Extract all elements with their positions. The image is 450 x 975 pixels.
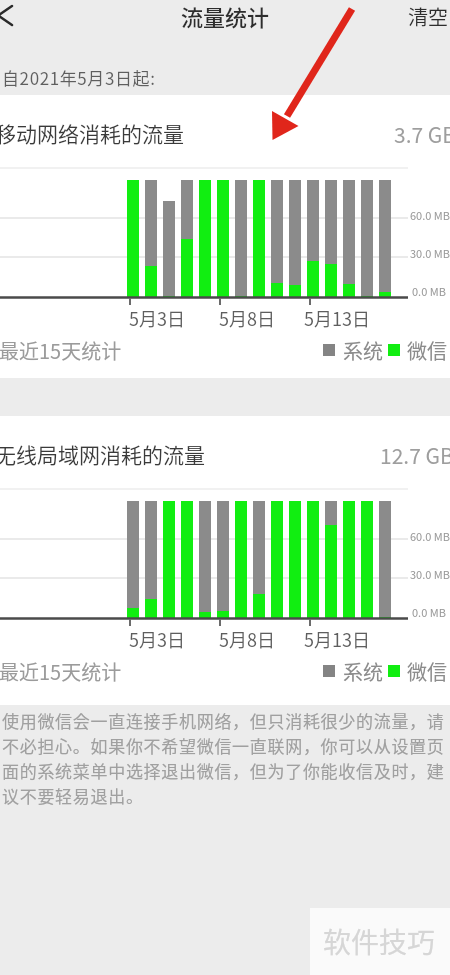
staticText: 无线局域网消耗的流量: [0, 439, 205, 467]
staticText: 系统: [343, 336, 383, 364]
staticText: 最近15天统计: [0, 657, 122, 685]
staticText: 微信: [407, 657, 447, 685]
staticText: 移动网络消耗的流量: [0, 118, 184, 146]
staticText: 5月8日: [219, 626, 275, 652]
staticText: 微信: [407, 336, 447, 364]
staticText: 5月8日: [219, 305, 275, 331]
staticText: 12.7 GB: [380, 440, 450, 468]
staticText: 60.0 MB: [410, 528, 450, 544]
staticText: 5月3日: [129, 305, 185, 331]
button[interactable]: 清空: [400, 0, 450, 32]
staticText: 清空: [408, 2, 448, 31]
staticText: 流量统计: [181, 0, 270, 32]
staticText: 30.0 MB: [410, 245, 450, 261]
button[interactable]: [0, 0, 26, 38]
staticText: 5月13日: [304, 305, 370, 331]
staticText: 自2021年5月3日起:: [2, 65, 156, 90]
staticText: 0.0 MB: [412, 604, 446, 620]
staticText: 0.0 MB: [412, 283, 446, 299]
staticText: 软件技巧: [323, 921, 436, 962]
staticText: 5月3日: [129, 626, 185, 652]
staticText: 5月13日: [304, 626, 370, 652]
staticText: 3.7 GB: [394, 119, 450, 147]
staticText: 最近15天统计: [0, 336, 122, 364]
staticText: 30.0 MB: [410, 566, 450, 582]
staticText: 系统: [343, 657, 383, 685]
staticText: 使用微信会一直连接手机网络，但只消耗很少的流量，请 不必担心。如果你不希望微信一…: [2, 708, 445, 808]
staticText: 60.0 MB: [410, 207, 450, 223]
